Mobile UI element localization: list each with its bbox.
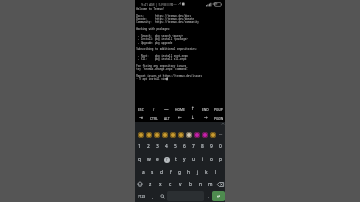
button[interactable]: d xyxy=(157,166,166,178)
button[interactable]: Enter xyxy=(212,191,225,201)
button[interactable]: w xyxy=(144,153,153,166)
button[interactable]: END xyxy=(199,104,212,113)
other: Backspace xyxy=(217,181,224,188)
staticText: d xyxy=(160,169,163,176)
button[interactable]: ⇥ xyxy=(135,113,147,122)
staticText: r xyxy=(166,156,168,163)
staticText: j xyxy=(197,169,199,176)
button[interactable]: b xyxy=(185,178,195,190)
button[interactable]: 9 xyxy=(207,140,216,153)
staticText: i xyxy=(202,156,204,163)
staticText: 7 xyxy=(192,143,195,150)
staticText: v xyxy=(179,181,182,188)
button[interactable]: Emoji xyxy=(169,131,177,138)
button[interactable]: l xyxy=(211,166,220,178)
staticText: a xyxy=(142,169,145,176)
staticText: ALT xyxy=(164,116,170,120)
staticText: → xyxy=(204,115,208,120)
button[interactable]: ↑ xyxy=(186,104,199,113)
button[interactable]: 3 xyxy=(153,140,162,153)
other: Shift xyxy=(137,181,143,187)
button[interactable]: . xyxy=(204,191,212,201)
button[interactable]: p xyxy=(216,153,225,166)
staticText: b xyxy=(189,181,192,188)
staticText: 8 xyxy=(201,143,204,150)
button[interactable]: i xyxy=(198,153,207,166)
button[interactable]: q xyxy=(135,153,144,166)
button[interactable]: v xyxy=(175,178,185,190)
staticText: CTRL xyxy=(150,116,158,120)
staticText: s xyxy=(151,169,154,176)
button[interactable]: x xyxy=(155,178,165,190)
staticText: 3 xyxy=(156,143,159,150)
staticText: h xyxy=(187,169,190,176)
button[interactable]: ?123 xyxy=(135,191,148,201)
staticText: 4 xyxy=(165,143,168,150)
button[interactable]: u xyxy=(189,153,198,166)
button[interactable]: y xyxy=(180,153,189,166)
button[interactable]: ESC xyxy=(135,104,147,113)
button[interactable]: ↓ xyxy=(186,113,199,122)
button[interactable]: Backspace xyxy=(215,178,225,190)
staticText: 2 xyxy=(147,143,150,150)
button[interactable]: a xyxy=(139,166,148,178)
button[interactable]: j xyxy=(193,166,202,178)
staticText: p xyxy=(219,156,222,163)
button[interactable]: f xyxy=(166,166,175,178)
button[interactable]: HOME xyxy=(173,104,186,113)
staticText: c xyxy=(169,181,172,188)
button[interactable]: CTRL xyxy=(147,113,160,122)
button[interactable]: r xyxy=(162,153,171,166)
button[interactable]: 1 xyxy=(135,140,144,153)
button[interactable]: z xyxy=(145,178,155,190)
button[interactable]: 2 xyxy=(144,140,153,153)
button[interactable]: s xyxy=(148,166,157,178)
button[interactable]: 0 xyxy=(216,140,225,153)
button[interactable]: 7 xyxy=(189,140,198,153)
button[interactable]: 6 xyxy=(180,140,189,153)
button[interactable]: g xyxy=(175,166,184,178)
button[interactable]: Emoji xyxy=(193,131,201,138)
button[interactable]: PGUP xyxy=(212,104,225,113)
button[interactable]: Emoji xyxy=(161,131,169,138)
button[interactable]: m xyxy=(205,178,215,190)
staticText: x xyxy=(159,181,162,188)
button[interactable]: / xyxy=(147,104,160,113)
button[interactable]: → xyxy=(199,113,212,122)
staticText: n xyxy=(199,181,202,188)
button[interactable]: Emoji xyxy=(177,131,185,138)
staticText: z xyxy=(149,181,152,188)
button[interactable]: e xyxy=(153,153,162,166)
button[interactable]: — xyxy=(160,104,173,113)
button[interactable]: n xyxy=(195,178,205,190)
button[interactable]: Emoji xyxy=(201,131,209,138)
button[interactable]: k xyxy=(202,166,211,178)
button[interactable]: More emoji xyxy=(217,131,224,138)
button[interactable]: 4 xyxy=(162,140,171,153)
button[interactable]: PGDN xyxy=(212,113,225,122)
button[interactable]: Emoji xyxy=(136,131,145,138)
button[interactable]: 8 xyxy=(198,140,207,153)
button[interactable]: c xyxy=(165,178,175,190)
staticText: ↓ xyxy=(191,115,195,120)
button[interactable]: ALT xyxy=(160,113,173,122)
button[interactable]: t xyxy=(171,153,180,166)
button[interactable]: h xyxy=(184,166,193,178)
button[interactable]: Emoji xyxy=(185,131,193,138)
staticText: o xyxy=(210,156,213,163)
button[interactable]: Emoji xyxy=(153,131,161,138)
button[interactable]: Emoji xyxy=(209,131,217,138)
staticText: 9:41 AM | 5月8日周一 xyxy=(141,2,177,7)
staticText: e xyxy=(156,156,159,163)
button[interactable]: Search xyxy=(157,191,167,201)
button[interactable]: o xyxy=(207,153,216,166)
button[interactable]: 5 xyxy=(171,140,180,153)
button[interactable]: ← xyxy=(173,113,186,122)
button[interactable]: Shift xyxy=(135,178,145,190)
button[interactable]: Emoji xyxy=(145,131,153,138)
staticText: u xyxy=(192,156,195,163)
staticText: l xyxy=(215,169,217,176)
staticText: ↵ xyxy=(217,194,221,199)
button[interactable]: , xyxy=(148,191,157,201)
